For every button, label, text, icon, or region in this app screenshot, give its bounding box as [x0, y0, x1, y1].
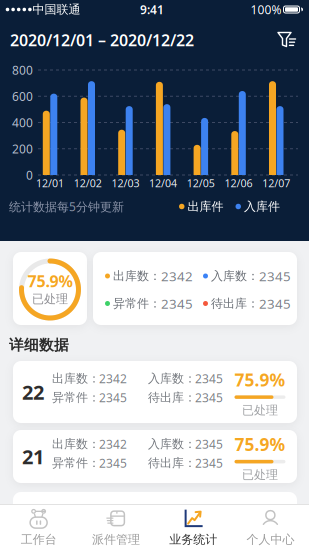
staticText: 2345 — [195, 370, 223, 386]
staticText: 2345 — [195, 389, 223, 405]
staticText: 异常件： — [52, 456, 100, 470]
staticText: 12/02 — [74, 176, 102, 190]
staticText: 12/03 — [111, 176, 139, 190]
staticText: 600 — [12, 88, 33, 104]
button[interactable]: 22 — [13, 361, 297, 423]
button[interactable]: 派件管理 — [77, 504, 154, 550]
staticText: 待出库： — [148, 390, 196, 405]
staticText: 12/05 — [187, 176, 215, 190]
staticText: 75.9% — [234, 433, 285, 456]
staticText: 2345 — [259, 267, 291, 285]
staticText: 22 — [22, 379, 44, 405]
staticText: 已处理 — [242, 467, 278, 482]
staticText: 9:41 — [140, 1, 164, 17]
button[interactable]: 个人中心 — [232, 504, 309, 550]
staticText: 入库数： — [148, 437, 196, 451]
staticText: 统计数据每5分钟更新 — [9, 198, 124, 214]
staticText: 2345 — [161, 295, 193, 312]
staticText: 2342 — [99, 436, 127, 452]
staticText: 75.9% — [234, 368, 285, 391]
staticText: 2345 — [195, 455, 223, 471]
staticText: 详细数据 — [9, 336, 69, 354]
button[interactable]: 工作台 — [0, 504, 77, 550]
staticText: 入库数： — [211, 269, 259, 283]
button[interactable]: 21 — [13, 430, 297, 483]
staticText: 出库件 — [187, 199, 223, 214]
staticText: 出库数： — [113, 269, 161, 283]
staticText: 12/07 — [262, 176, 290, 190]
staticText: 已处理 — [242, 403, 278, 418]
staticText: 12/04 — [149, 176, 177, 190]
staticText: 入库数： — [148, 371, 196, 386]
staticText: 业务统计 — [169, 532, 217, 547]
staticText: 75.9% — [27, 270, 72, 292]
staticText: 出库数： — [52, 437, 100, 451]
staticText: 工作台 — [21, 532, 57, 547]
button[interactable]: 业务统计 — [154, 504, 232, 550]
staticText: 异常件： — [52, 390, 100, 405]
staticText: 2345 — [195, 436, 223, 452]
staticText: 2020/12/01 – 2020/12/22 — [10, 29, 194, 51]
staticText: 100% — [250, 1, 281, 17]
staticText: 400 — [12, 114, 33, 130]
staticText: 2345 — [259, 295, 291, 312]
staticText: 个人中心 — [246, 532, 294, 547]
staticText: 出库数： — [52, 371, 100, 386]
staticText: 800 — [12, 62, 33, 78]
staticText: 200 — [12, 141, 33, 157]
staticText: 派件管理 — [92, 532, 140, 547]
staticText: 待出库： — [211, 296, 259, 311]
staticText: 待出库： — [148, 456, 196, 470]
staticText: 2345 — [99, 389, 127, 405]
staticText: 已处理 — [32, 292, 68, 306]
staticText: 中国联通 — [32, 2, 80, 17]
staticText: 入库件 — [244, 199, 280, 214]
staticText: 2342 — [161, 267, 193, 285]
button[interactable]: 筛选 — [275, 28, 299, 52]
staticText: 21 — [22, 443, 44, 470]
staticText: 12/01 — [36, 176, 64, 190]
staticText: 异常件： — [113, 296, 161, 311]
staticText: 2342 — [99, 370, 127, 386]
staticText: 0 — [26, 167, 33, 183]
staticText: 2345 — [99, 455, 127, 471]
staticText: 12/06 — [224, 176, 252, 190]
